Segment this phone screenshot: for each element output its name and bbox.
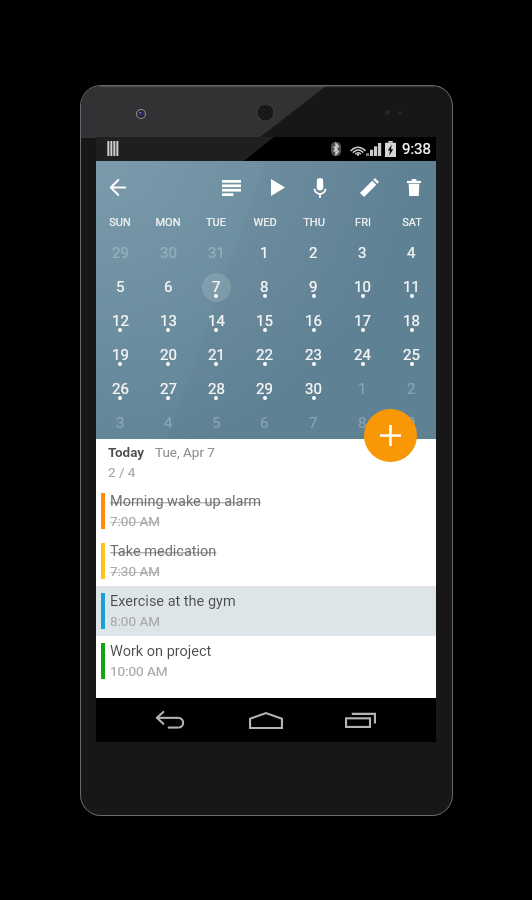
staticText: 2: [407, 380, 416, 398]
button[interactable]: 16: [289, 310, 338, 344]
button[interactable]: Play: [255, 161, 301, 214]
button[interactable]: 4: [387, 242, 436, 276]
button[interactable]: Delete: [391, 161, 437, 214]
button[interactable]: 22: [240, 344, 289, 378]
button[interactable]: 6: [144, 276, 192, 310]
button[interactable]: 13: [144, 310, 192, 344]
button[interactable]: 11: [387, 276, 436, 310]
staticText: Work on project: [110, 643, 212, 660]
staticText: 28: [208, 380, 225, 398]
button[interactable]: 18: [387, 310, 436, 344]
button[interactable]: Back: [96, 161, 140, 214]
staticText: 23: [305, 346, 322, 364]
staticText: Today: [108, 444, 145, 460]
staticText: 2: [309, 244, 318, 262]
button[interactable]: Agenda view: [208, 161, 254, 214]
button[interactable]: Exercise at the gym: [96, 586, 436, 636]
staticText: Morning wake up alarm: [110, 493, 262, 510]
button[interactable]: 24: [338, 344, 387, 378]
button[interactable]: 25: [387, 344, 436, 378]
staticText: 8: [260, 278, 269, 296]
staticText: 31: [208, 244, 225, 262]
staticText: 10: [354, 278, 371, 296]
staticText: 9:38: [402, 140, 431, 158]
staticText: 29: [112, 244, 129, 262]
staticText: TUE: [206, 216, 226, 229]
staticText: 8: [358, 414, 367, 432]
button[interactable]: Back: [128, 698, 213, 742]
staticText: 7: [212, 278, 221, 296]
button[interactable]: 20: [144, 344, 192, 378]
staticText: 3: [116, 414, 125, 432]
button[interactable]: 19: [96, 344, 144, 378]
button[interactable]: 7: [192, 276, 240, 310]
button[interactable]: Morning wake up alarm: [96, 486, 436, 536]
button[interactable]: 26: [96, 378, 144, 412]
staticText: THU: [303, 216, 325, 229]
staticText: 13: [160, 312, 177, 330]
button[interactable]: 29: [240, 378, 289, 412]
button[interactable]: Work on project: [96, 636, 436, 686]
staticText: Take medication: [110, 543, 217, 560]
button[interactable]: 14: [192, 310, 240, 344]
button[interactable]: 30: [144, 242, 192, 276]
staticText: 7: [309, 414, 318, 432]
button[interactable]: 3: [96, 412, 144, 446]
staticText: 3: [358, 244, 367, 262]
button[interactable]: Home: [223, 698, 308, 742]
staticText: 26: [112, 380, 129, 398]
button[interactable]: 12: [96, 310, 144, 344]
staticText: 30: [160, 244, 177, 262]
staticText: 6: [164, 278, 173, 296]
button[interactable]: 31: [192, 242, 240, 276]
button[interactable]: 28: [192, 378, 240, 412]
button[interactable]: 5: [96, 276, 144, 310]
staticText: 9: [309, 278, 318, 296]
staticText: SUN: [109, 216, 131, 229]
button[interactable]: 2: [387, 378, 436, 412]
button[interactable]: 27: [144, 378, 192, 412]
button[interactable]: 8: [338, 412, 387, 446]
staticText: 6: [260, 414, 269, 432]
button[interactable]: 15: [240, 310, 289, 344]
button[interactable]: 9: [387, 412, 436, 446]
staticText: 21: [208, 346, 225, 364]
staticText: 1: [260, 244, 269, 262]
button[interactable]: 29: [96, 242, 144, 276]
button[interactable]: Recent apps: [318, 698, 403, 742]
staticText: 19: [112, 346, 129, 364]
staticText: 7:30 AM: [110, 563, 160, 579]
button[interactable]: 5: [192, 412, 240, 446]
staticText: 17: [354, 312, 371, 330]
button[interactable]: 23: [289, 344, 338, 378]
button[interactable]: Take medication: [96, 536, 436, 586]
staticText: 11: [403, 278, 420, 296]
button[interactable]: 3: [338, 242, 387, 276]
button[interactable]: 9: [289, 276, 338, 310]
staticText: 12: [112, 312, 129, 330]
button[interactable]: 4: [144, 412, 192, 446]
staticText: 5: [212, 414, 221, 432]
button[interactable]: 7: [289, 412, 338, 446]
staticText: 16: [305, 312, 322, 330]
button[interactable]: 17: [338, 310, 387, 344]
button[interactable]: 2: [289, 242, 338, 276]
button[interactable]: 8: [240, 276, 289, 310]
staticText: Exercise at the gym: [110, 593, 236, 610]
staticText: 2 / 4: [108, 464, 136, 480]
button[interactable]: 1: [240, 242, 289, 276]
button[interactable]: 1: [338, 378, 387, 412]
staticText: SAT: [402, 216, 422, 229]
button[interactable]: Edit: [346, 161, 392, 214]
button[interactable]: 21: [192, 344, 240, 378]
button[interactable]: 6: [240, 412, 289, 446]
button[interactable]: Voice input: [297, 161, 343, 214]
staticText: 4: [407, 244, 416, 262]
staticText: 1: [358, 380, 367, 398]
button[interactable]: Add event: [364, 409, 417, 462]
button[interactable]: 10: [338, 276, 387, 310]
button[interactable]: 30: [289, 378, 338, 412]
staticText: 15: [256, 312, 273, 330]
staticText: 24: [354, 346, 371, 364]
staticText: 4: [164, 414, 173, 432]
